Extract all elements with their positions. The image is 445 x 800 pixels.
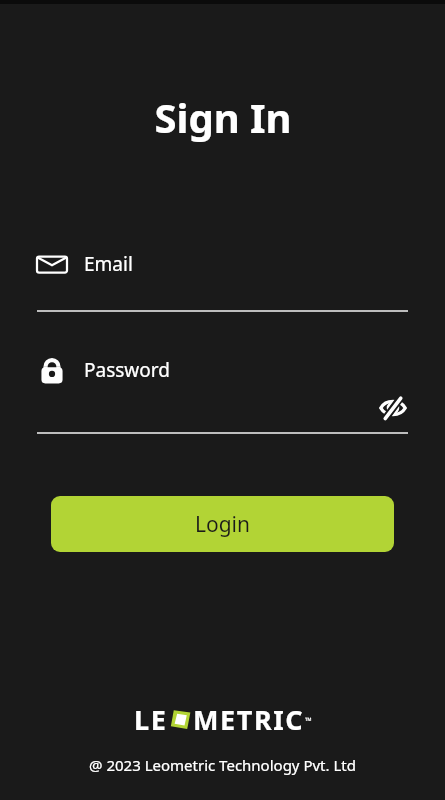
staticText: ™ (305, 714, 312, 726)
button[interactable]: Password (37, 355, 408, 434)
staticText: Email (84, 251, 133, 277)
staticText: LE (134, 701, 168, 738)
button[interactable]: Show password (378, 393, 408, 423)
staticText: Password (84, 357, 170, 383)
button[interactable]: Login (51, 496, 394, 552)
staticText: Sign In (154, 90, 292, 144)
staticText: METRIC (193, 701, 305, 738)
staticText: @ 2023 Leometric Technology Pvt. Ltd (89, 755, 356, 775)
staticText: Login (195, 510, 251, 539)
button[interactable]: Email (37, 249, 408, 312)
